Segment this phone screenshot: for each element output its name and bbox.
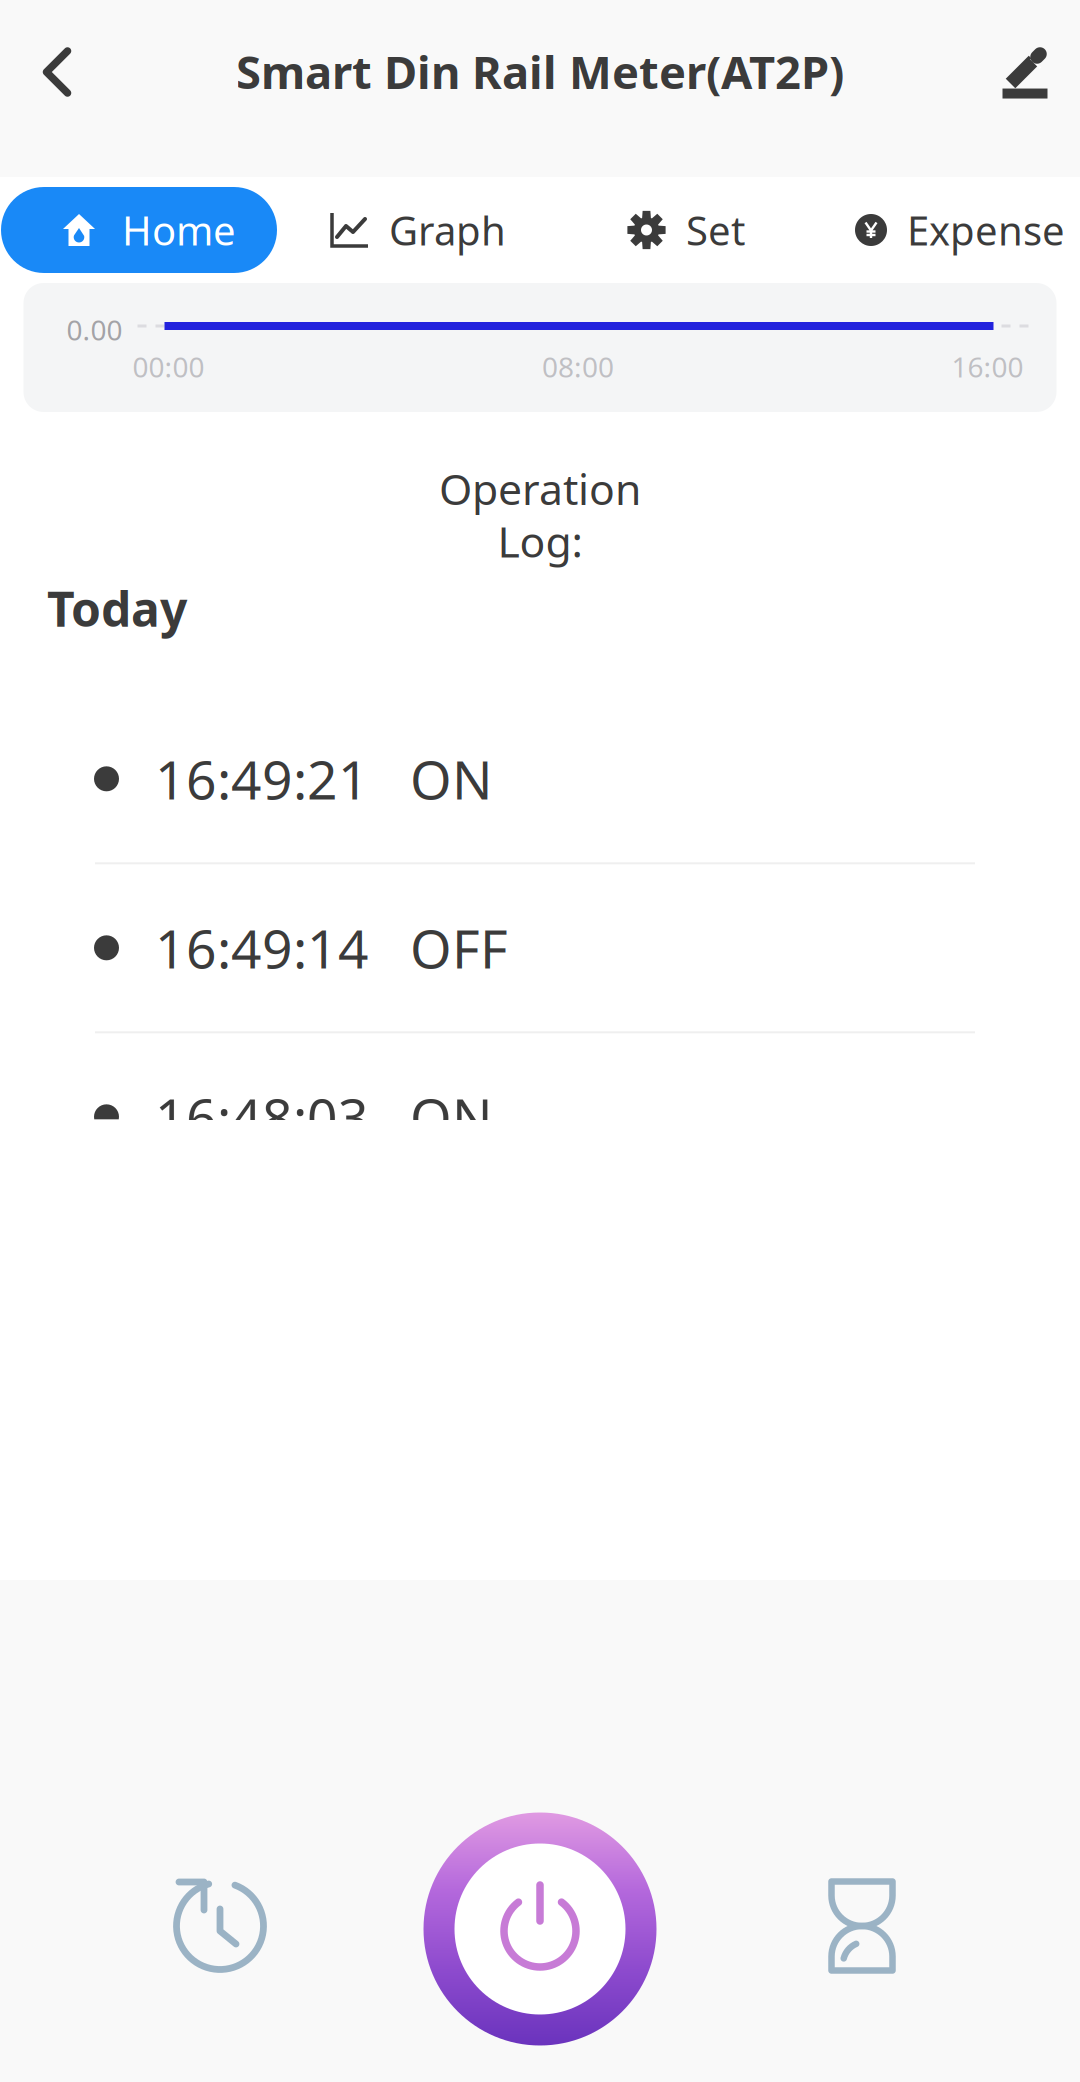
staticText: Log:	[497, 513, 582, 569]
staticText: Expense	[907, 203, 1065, 256]
button[interactable]: Edit	[970, 0, 1080, 144]
staticText: OFF	[410, 912, 508, 983]
staticText: 16:49:14	[155, 912, 369, 983]
staticText: 00:00	[132, 348, 204, 385]
staticText: ON	[410, 1081, 493, 1152]
button[interactable]: Countdown timer	[140, 1846, 300, 2006]
staticText: 0.00	[66, 311, 122, 348]
button[interactable]: Back	[0, 0, 114, 144]
button[interactable]: Set	[627, 187, 745, 273]
staticText: Smart Din Rail Meter(AT2P)	[236, 41, 844, 102]
staticText: 16:00	[951, 348, 1023, 385]
staticText: ON	[410, 743, 493, 814]
staticText: 16:48:03	[155, 1081, 369, 1152]
staticText: Home	[122, 203, 236, 256]
button[interactable]: Schedule	[782, 1846, 942, 2006]
staticText: 08:00	[542, 348, 614, 385]
button[interactable]: Home	[1, 187, 277, 273]
button[interactable]: Power	[410, 1799, 670, 2059]
staticText: 16:49:21	[155, 743, 369, 814]
button[interactable]: Expense	[855, 187, 1065, 273]
button[interactable]: Graph	[330, 187, 506, 273]
staticText: Operation	[439, 460, 641, 517]
staticText: Set	[686, 203, 745, 256]
staticText: Graph	[389, 203, 506, 256]
staticText: Today	[47, 576, 187, 640]
